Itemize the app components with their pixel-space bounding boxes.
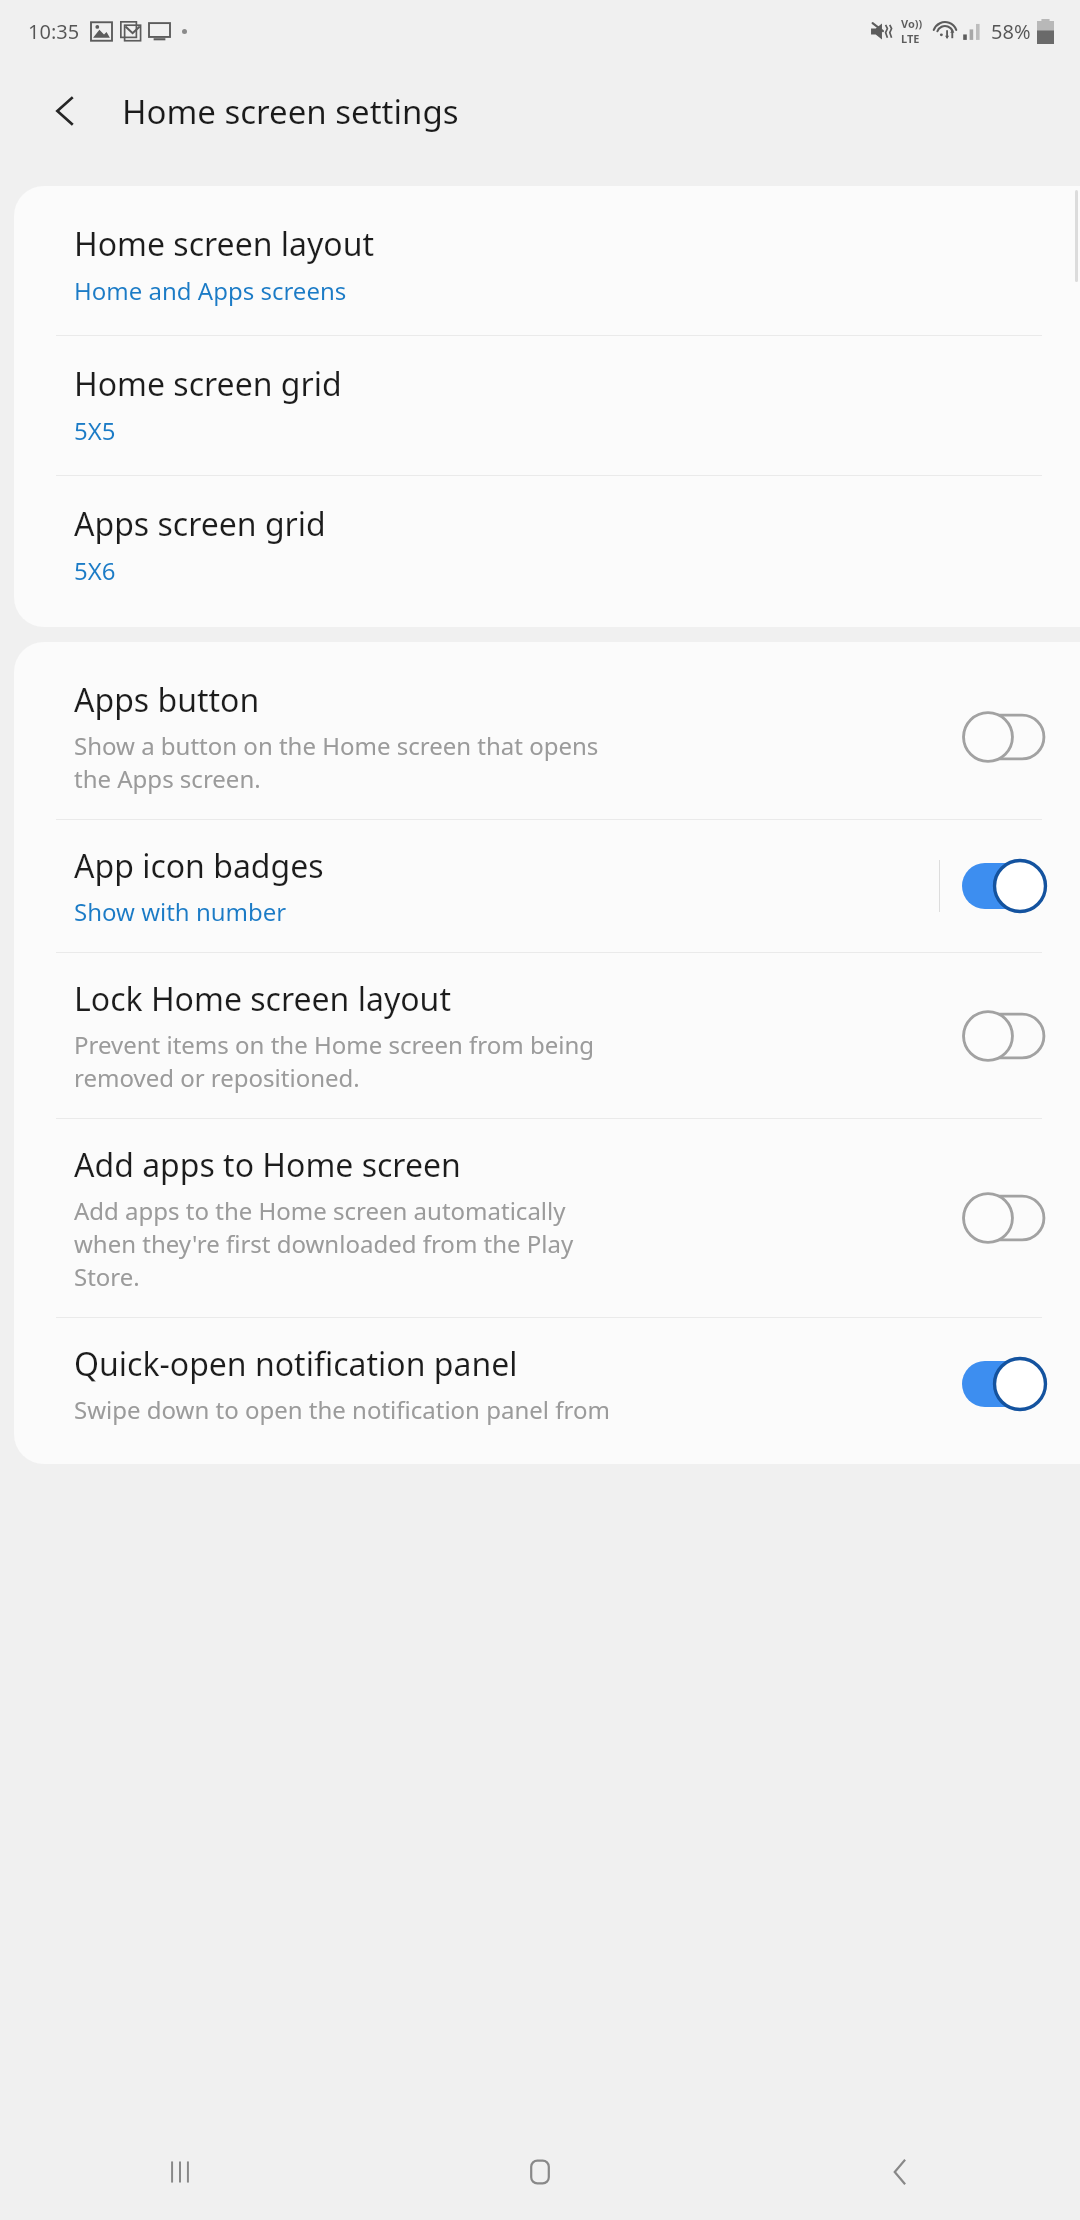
button[interactable]: Lock Home screen layout — [14, 953, 1080, 1118]
staticText: Quick-open notification panel — [74, 1342, 518, 1386]
staticText: 58% — [991, 18, 1031, 45]
staticText: Show with number — [74, 895, 287, 928]
staticText: LTE — [901, 31, 920, 46]
button[interactable]: Toggle off — [962, 1010, 1046, 1062]
staticText: Add apps to Home screen — [74, 1143, 461, 1187]
button[interactable]: Toggle off — [962, 711, 1046, 763]
staticText: Apps screen grid — [74, 502, 326, 546]
button[interactable]: Back — [720, 2124, 1080, 2220]
staticText: Vo)) — [901, 16, 923, 31]
button[interactable]: Home screen layout — [14, 196, 1080, 335]
button[interactable]: App icon badges — [14, 820, 1080, 952]
button[interactable]: Quick-open notification panel — [14, 1318, 1080, 1450]
staticText: 5X5 — [74, 414, 116, 447]
button[interactable]: Recents — [0, 2124, 360, 2220]
button[interactable]: Home screen grid — [14, 336, 1080, 475]
staticText: Add apps to the Home screen automaticall… — [74, 1194, 574, 1293]
staticText: 10:35 — [28, 18, 80, 45]
staticText: Apps button — [74, 678, 260, 722]
button[interactable]: Toggle on — [962, 860, 1046, 912]
button[interactable]: Back — [40, 85, 92, 137]
staticText: Prevent items on the Home screen from be… — [74, 1028, 594, 1094]
button[interactable]: Apps screen grid — [14, 476, 1080, 615]
staticText: 5X6 — [74, 554, 116, 587]
staticText: Home and Apps screens — [74, 274, 347, 307]
staticText: Show a button on the Home screen that op… — [74, 729, 599, 795]
button[interactable]: Apps button — [14, 654, 1080, 819]
button[interactable]: Toggle on — [962, 1358, 1046, 1410]
staticText: App icon badges — [74, 844, 324, 888]
button[interactable]: Toggle off — [962, 1192, 1046, 1244]
staticText: Lock Home screen layout — [74, 977, 451, 1021]
staticText: Home screen settings — [122, 89, 459, 134]
staticText: Home screen layout — [74, 222, 375, 266]
staticText: Swipe down to open the notification pane… — [74, 1393, 610, 1426]
staticText: Home screen grid — [74, 362, 342, 406]
button[interactable]: Add apps to Home screen — [14, 1119, 1080, 1317]
button[interactable]: Home — [360, 2124, 720, 2220]
